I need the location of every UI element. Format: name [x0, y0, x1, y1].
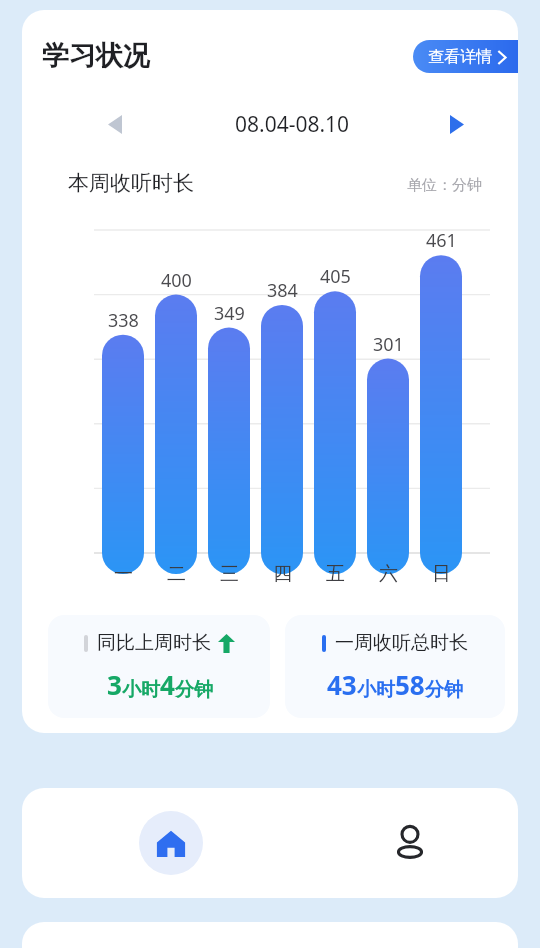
staticText: 本周收听时长	[68, 170, 194, 196]
staticText: 一周收听总时长	[335, 631, 468, 655]
staticText: 461	[426, 228, 457, 253]
staticText: 小时	[357, 678, 395, 702]
staticText: 一	[114, 562, 133, 586]
staticText: 349	[214, 301, 245, 326]
staticText: 查看详情	[428, 47, 492, 67]
staticText: 405	[320, 264, 351, 289]
staticText: 338	[108, 308, 139, 333]
button[interactable]: Profile	[354, 806, 466, 880]
staticText: 单位：分钟	[407, 176, 482, 195]
button[interactable]: 查看详情	[413, 40, 518, 73]
staticText: 301	[373, 332, 404, 357]
button[interactable]: 一周收听总时长	[285, 615, 505, 718]
staticText: 同比上周时长	[97, 631, 211, 655]
staticText: 3	[107, 667, 122, 702]
button[interactable]: Next week	[434, 102, 480, 146]
staticText: 4	[160, 667, 175, 702]
staticText: 分钟	[175, 678, 213, 702]
staticText: 小时	[122, 678, 160, 702]
staticText: 学习状况	[42, 39, 150, 73]
staticText: 400	[161, 268, 192, 293]
staticText: 四	[273, 562, 292, 586]
staticText: 三	[220, 562, 239, 586]
staticText: 日	[432, 562, 451, 586]
button[interactable]: 同比上周时长	[48, 615, 270, 718]
staticText: 43	[327, 667, 357, 702]
staticText: 分钟	[425, 678, 463, 702]
button[interactable]: Home	[115, 806, 227, 880]
button[interactable]: Previous week	[92, 102, 138, 146]
staticText: 58	[395, 667, 425, 702]
staticText: 五	[326, 562, 345, 586]
staticText: 384	[267, 278, 298, 303]
staticText: 六	[379, 562, 398, 586]
staticText: 二	[167, 562, 186, 586]
staticText: 08.04-08.10	[235, 110, 350, 139]
